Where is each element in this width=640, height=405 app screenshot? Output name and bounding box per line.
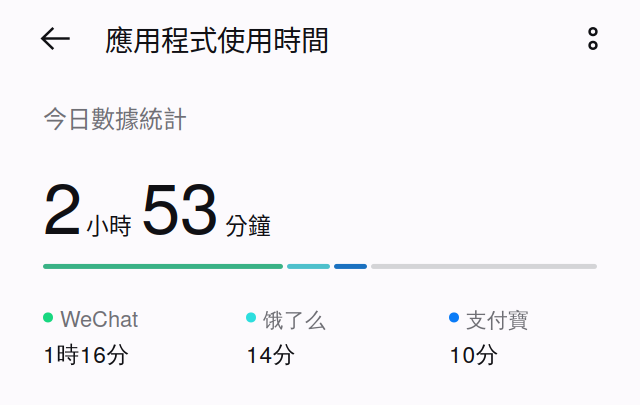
staticText: 1時16分 xyxy=(43,337,130,369)
staticText: 小時 xyxy=(86,208,132,240)
staticText: 支付寶 xyxy=(466,307,529,333)
button[interactable]: Back xyxy=(20,2,92,74)
staticText: 2 xyxy=(43,153,82,254)
staticText: WeChat xyxy=(60,302,138,333)
staticText: 53 xyxy=(141,153,219,254)
staticText: 10分 xyxy=(449,337,499,369)
button[interactable]: More options xyxy=(557,2,629,74)
staticText: 分鐘 xyxy=(225,208,271,240)
staticText: 14分 xyxy=(246,337,296,369)
staticText: 應用程式使用時間 xyxy=(105,18,329,59)
staticText: 今日數據統計 xyxy=(43,100,187,135)
staticText: 饿了么 xyxy=(263,307,326,333)
